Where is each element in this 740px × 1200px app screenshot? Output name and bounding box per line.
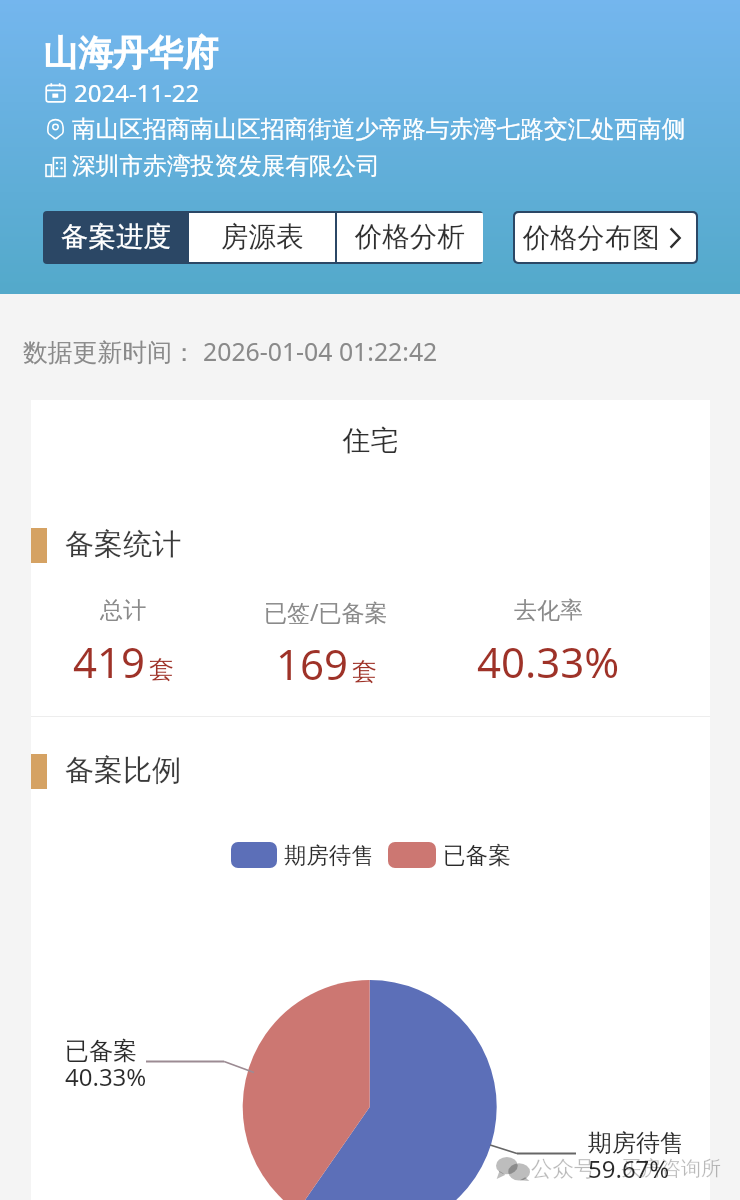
staticText: 深圳市赤湾投资发展有限公司	[72, 151, 380, 181]
staticText: 住宅	[31, 423, 710, 458]
staticText: 备案统计	[65, 526, 181, 563]
staticText: 已备案	[443, 841, 511, 869]
staticText: 期房待售	[284, 841, 374, 869]
staticText: 备案比例	[65, 752, 181, 789]
staticText: 数据更新时间： 2026-01-04 01:22:42	[23, 334, 438, 368]
staticText: 买房咨询所	[621, 1156, 721, 1181]
button[interactable]: 备案进度	[43, 211, 189, 264]
button[interactable]: 价格分布图	[513, 211, 698, 264]
button[interactable]: 价格分析	[337, 211, 483, 264]
staticText: 已备案 40.33%	[65, 1036, 147, 1093]
staticText: 房源表	[221, 220, 304, 255]
staticText: 山海丹华府	[43, 31, 218, 75]
staticText: 2024-11-22	[74, 76, 200, 109]
staticText: 备案进度	[61, 220, 171, 255]
staticText: 价格分布图	[523, 221, 660, 255]
staticText: 去化率	[514, 596, 583, 625]
staticText: 已签/已备案	[264, 596, 388, 627]
staticText: 419	[73, 633, 146, 690]
staticText: 169	[276, 635, 349, 692]
staticText: 公众号	[531, 1155, 596, 1182]
staticText: 总计	[100, 596, 146, 625]
staticText: 期房待售 59.67%	[588, 1128, 684, 1185]
staticText: 40.33%	[477, 633, 620, 690]
staticText: 价格分析	[355, 220, 465, 255]
staticText: 套	[352, 656, 377, 687]
button[interactable]: 房源表	[189, 211, 335, 264]
staticText: 套	[149, 654, 174, 685]
staticText: 南山区招商南山区招商街道少帝路与赤湾七路交汇处西南侧	[72, 114, 686, 144]
